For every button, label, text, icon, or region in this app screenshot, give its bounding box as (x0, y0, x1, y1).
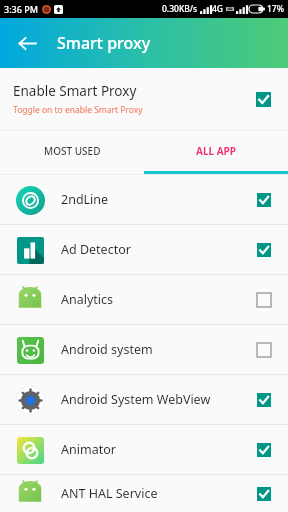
button[interactable]: Ad Detector (0, 225, 288, 274)
staticText: 0.30KB/s (162, 3, 198, 15)
button[interactable]: Checked (253, 439, 275, 461)
button[interactable]: Analytics (0, 275, 288, 324)
staticText: Enable Smart Proxy (13, 82, 137, 100)
staticText: Android System WebView (61, 391, 253, 408)
button[interactable]: Checked (253, 239, 275, 261)
staticText: Animator (61, 441, 253, 458)
button[interactable]: Checked (252, 88, 275, 111)
staticText: 3:36 PM (4, 3, 38, 15)
button[interactable]: 2ndLine (0, 175, 288, 224)
staticText: ANT HAL Service (61, 485, 253, 502)
staticText: Ad Detector (61, 241, 253, 258)
staticText: Analytics (61, 291, 253, 308)
button[interactable]: ALL APP (144, 131, 288, 171)
button[interactable]: Android System WebView (0, 375, 288, 424)
button[interactable]: Checked (253, 389, 275, 411)
button[interactable]: Back (8, 24, 46, 62)
button[interactable]: Checked (253, 483, 275, 505)
button[interactable]: ANT HAL Service (0, 475, 288, 512)
staticText: Smart proxy (57, 32, 151, 54)
staticText: 17% (267, 3, 284, 15)
button[interactable]: Android system (0, 325, 288, 374)
button[interactable]: Unchecked (253, 339, 275, 361)
staticText: ALL APP (196, 144, 237, 158)
button[interactable]: MOST USED (0, 131, 144, 171)
staticText: Toggle on to enable Smart Proxy (13, 104, 143, 116)
staticText: Android system (61, 341, 253, 358)
button[interactable]: Unchecked (253, 289, 275, 311)
button[interactable]: Enable Smart Proxy (0, 68, 288, 130)
button[interactable]: Checked (253, 189, 275, 211)
button[interactable]: Animator (0, 425, 288, 474)
staticText: 4G (212, 3, 224, 15)
staticText: 2ndLine (61, 191, 253, 208)
staticText: MOST USED (44, 144, 101, 158)
